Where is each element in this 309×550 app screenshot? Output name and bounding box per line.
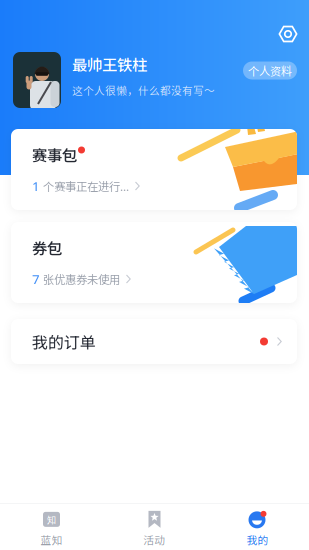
button[interactable]: Settings (273, 19, 303, 49)
button[interactable]: 知 (0, 504, 103, 550)
staticText: 1 (32, 177, 43, 195)
staticText: 活动 (143, 532, 165, 547)
staticText: 个人资料 (248, 62, 292, 79)
button[interactable]: 我的订单 (11, 319, 297, 364)
button[interactable]: 券包 (11, 222, 297, 303)
staticText: 个赛事正在进行... (43, 178, 129, 194)
staticText: 赛事包 (32, 143, 77, 166)
button[interactable]: 活动 (103, 504, 206, 550)
staticText: 券包 (32, 236, 62, 259)
button[interactable]: 赛事包 (11, 129, 297, 210)
button[interactable]: 个人资料 (243, 61, 297, 79)
staticText: 知 (47, 513, 56, 526)
staticText: 这个人很懒，什么都没有写～ (72, 82, 215, 98)
staticText: 我的订单 (32, 330, 96, 353)
staticText: 最帅王铁柱 (72, 53, 147, 75)
button[interactable]: 我的 (206, 504, 309, 550)
staticText: 我的 (246, 532, 268, 547)
staticText: 7 (32, 270, 43, 288)
staticText: 张优惠券未使用 (43, 271, 120, 287)
staticText: 蓝知 (40, 532, 62, 547)
